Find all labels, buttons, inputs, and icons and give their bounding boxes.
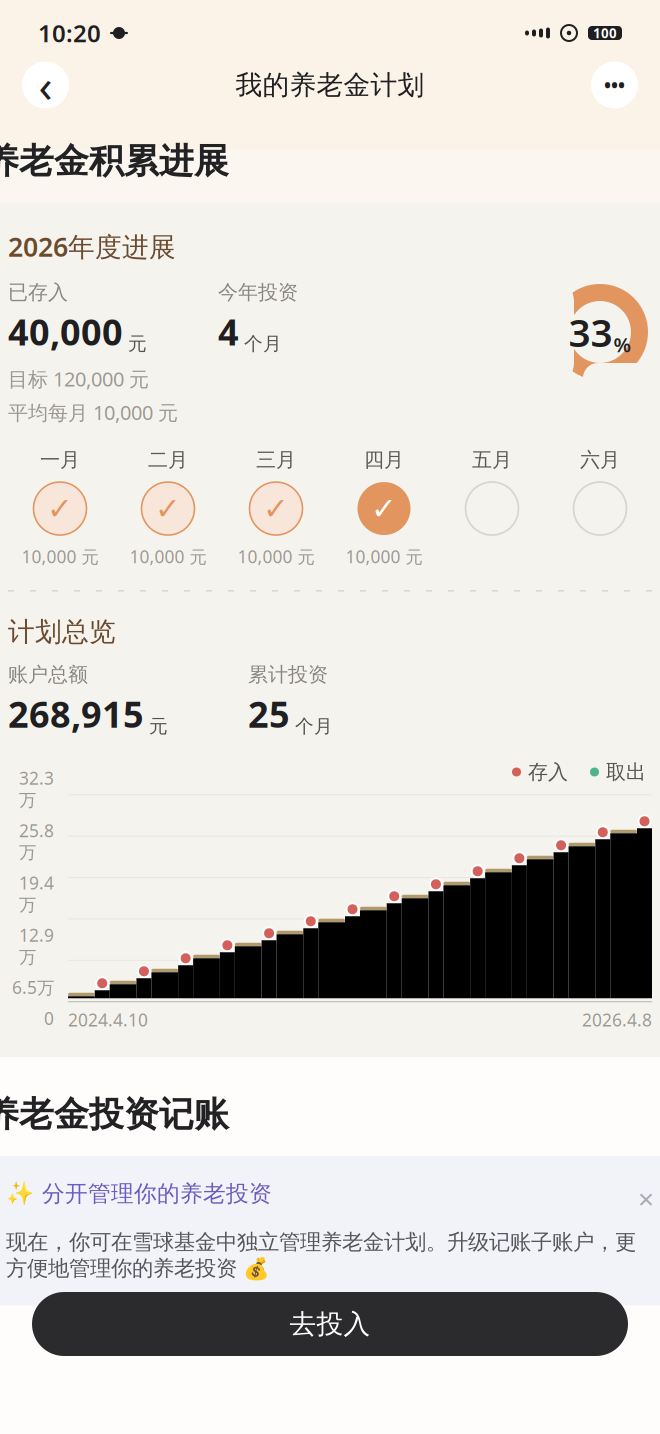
- staticText: 40,000: [8, 308, 123, 355]
- staticText: ✓: [47, 491, 73, 526]
- button[interactable]: 去投入: [32, 1292, 628, 1356]
- staticText: 养老金投资记账: [0, 1093, 229, 1136]
- staticText: 去投入: [289, 1308, 370, 1340]
- staticText: 25: [248, 690, 290, 738]
- staticText: 2024.4.10: [68, 1008, 148, 1031]
- staticText: 存入: [528, 760, 568, 784]
- staticText: 分开管理你的养老投资: [42, 1180, 272, 1208]
- staticText: 25.8万: [19, 819, 54, 863]
- staticText: 2026年度进展: [8, 229, 176, 264]
- staticText: 4: [218, 308, 239, 355]
- staticText: 累计投资: [248, 662, 328, 687]
- staticText: 我的养老金计划: [235, 69, 424, 101]
- staticText: ✨: [6, 1180, 34, 1206]
- staticText: 12.9万: [19, 924, 54, 968]
- staticText: 19.4万: [19, 871, 54, 915]
- staticText: 目标 120,000 元: [8, 365, 149, 392]
- staticText: 个月: [244, 332, 282, 355]
- staticText: 10,000 元: [129, 545, 206, 568]
- staticText: 元: [128, 332, 147, 355]
- staticText: 元: [149, 715, 168, 738]
- staticText: 个月: [295, 715, 333, 738]
- staticText: 2026.4.8: [582, 1008, 652, 1031]
- staticText: ×: [638, 1180, 654, 1217]
- staticText: 五月: [472, 447, 512, 472]
- staticText: 现在，你可在雪球基金中独立管理养老金计划。升级记账子账户，更方便地管理你的养老投…: [6, 1229, 636, 1281]
- staticText: 养老金积累进展: [0, 140, 229, 183]
- staticText: 10:20: [38, 17, 101, 49]
- staticText: 二月: [148, 447, 188, 472]
- staticText: 账户总额: [8, 662, 88, 687]
- button[interactable]: ✨: [0, 1156, 660, 1305]
- staticText: 10,000 元: [237, 545, 314, 568]
- staticText: 33: [568, 306, 612, 358]
- staticText: 计划总览: [8, 616, 116, 648]
- staticText: ✓: [155, 491, 181, 526]
- staticText: 10,000 元: [345, 545, 422, 568]
- staticText: 32.3万: [19, 767, 54, 811]
- staticText: 六月: [580, 447, 620, 472]
- staticText: ✓: [371, 491, 397, 526]
- staticText: 100: [593, 24, 617, 42]
- staticText: 已存入: [8, 280, 68, 305]
- button[interactable]: Back: [22, 61, 69, 108]
- button[interactable]: More options: [591, 61, 638, 108]
- staticText: %: [613, 331, 631, 358]
- staticText: 268,915: [8, 690, 144, 738]
- staticText: 取出: [606, 760, 646, 784]
- staticText: 今年投资: [218, 280, 298, 305]
- staticText: 四月: [364, 447, 404, 472]
- staticText: 0: [44, 1007, 54, 1030]
- staticText: ‹: [38, 55, 52, 115]
- staticText: 10,000 元: [21, 545, 98, 568]
- staticText: 一月: [40, 447, 80, 472]
- staticText: •••: [604, 73, 625, 97]
- staticText: ✓: [263, 491, 289, 526]
- staticText: 平均每月 10,000 元: [8, 399, 178, 425]
- staticText: 三月: [256, 447, 296, 472]
- staticText: 6.5万: [12, 976, 54, 999]
